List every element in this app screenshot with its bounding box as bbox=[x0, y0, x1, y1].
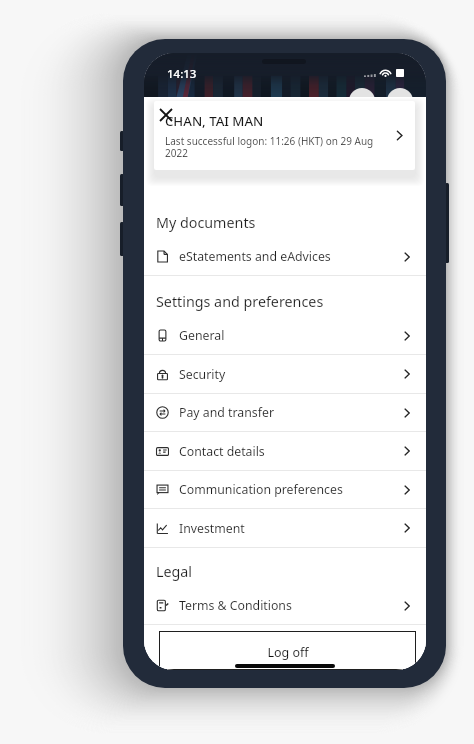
staticText: Investment bbox=[179, 520, 400, 537]
staticText: Last successful logon: 11:26 (HKT) on 29… bbox=[165, 134, 381, 160]
button[interactable]: eStatements and eAdvices bbox=[144, 238, 426, 275]
staticText: Pay and transfer bbox=[179, 404, 400, 421]
staticText: eStatements and eAdvices bbox=[179, 248, 400, 265]
button[interactable]: Pay and transfer bbox=[144, 394, 426, 431]
staticText: CHAN, TAI MAN bbox=[165, 112, 264, 130]
staticText: Legal bbox=[156, 562, 193, 581]
staticText: Settings and preferences bbox=[156, 292, 324, 311]
staticText: Log off bbox=[267, 644, 309, 661]
button[interactable]: General bbox=[144, 317, 426, 354]
button[interactable]: Communication preferences bbox=[144, 471, 426, 508]
staticText: Contact details bbox=[179, 443, 400, 460]
button[interactable]: Security bbox=[144, 355, 426, 393]
button[interactable]: Terms & Conditions bbox=[144, 587, 426, 624]
button[interactable]: Investment bbox=[144, 509, 426, 547]
button[interactable]: Contact details bbox=[144, 432, 426, 470]
button[interactable]: Log off bbox=[159, 631, 416, 670]
staticText: Communication preferences bbox=[179, 481, 400, 498]
staticText: Terms & Conditions bbox=[179, 597, 400, 614]
staticText: 14:13 bbox=[167, 66, 197, 82]
staticText: My documents bbox=[156, 213, 256, 232]
staticText: General bbox=[179, 327, 400, 344]
staticText: Security bbox=[179, 366, 400, 383]
button[interactable]: CHAN, TAI MAN bbox=[154, 101, 415, 170]
